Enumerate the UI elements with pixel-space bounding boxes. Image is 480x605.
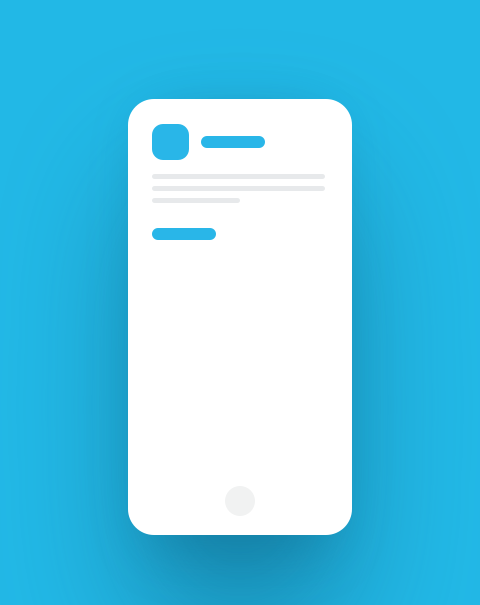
button[interactable]: Continue <box>152 228 216 240</box>
button[interactable]: Home <box>225 486 255 516</box>
